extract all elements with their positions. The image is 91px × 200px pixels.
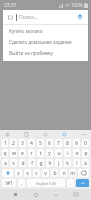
button[interactable]: Sticker bbox=[42, 131, 49, 138]
button[interactable]: 0 bbox=[82, 139, 89, 147]
button[interactable]: p bbox=[82, 149, 89, 157]
button[interactable]: Back bbox=[51, 190, 60, 199]
button[interactable]: 8 bbox=[64, 139, 71, 147]
staticText: x bbox=[26, 170, 29, 177]
button[interactable]: English (US) bbox=[27, 179, 65, 187]
button[interactable]: j bbox=[55, 159, 62, 167]
button[interactable]: Emoji bbox=[61, 131, 68, 138]
button[interactable]: l bbox=[73, 159, 80, 167]
staticText: 6 bbox=[48, 140, 51, 147]
staticText: t bbox=[40, 150, 42, 157]
button[interactable]: i bbox=[64, 149, 71, 157]
button[interactable]: b bbox=[51, 169, 58, 177]
staticText: v bbox=[44, 170, 47, 177]
staticText: Поиск… bbox=[19, 14, 38, 21]
staticText: s bbox=[12, 160, 15, 167]
button[interactable]: m bbox=[69, 169, 76, 177]
staticText: i bbox=[67, 150, 69, 157]
button[interactable]: Купить молоко bbox=[3, 25, 88, 36]
button[interactable]: . bbox=[67, 179, 74, 187]
button[interactable]: 1 bbox=[2, 139, 8, 147]
button[interactable]: y bbox=[46, 149, 53, 157]
button[interactable]: h bbox=[46, 159, 53, 167]
button[interactable]: Search engine bbox=[3, 10, 88, 24]
staticText: ä bbox=[84, 160, 87, 167]
button[interactable]: Clipboard bbox=[23, 131, 30, 138]
staticText: h bbox=[48, 160, 52, 167]
button[interactable]: Home bbox=[31, 190, 40, 199]
button[interactable]: Enter bbox=[76, 179, 89, 187]
button[interactable]: f bbox=[28, 159, 35, 167]
staticText: m bbox=[70, 170, 75, 177]
button[interactable]: 4 bbox=[28, 139, 35, 147]
staticText: y bbox=[48, 150, 51, 157]
button[interactable]: a bbox=[2, 159, 8, 167]
staticText: 8 bbox=[66, 140, 69, 147]
button[interactable]: s bbox=[10, 159, 17, 167]
staticText: 1 bbox=[4, 140, 7, 147]
staticText: 2 bbox=[12, 140, 15, 147]
staticText: 9 bbox=[75, 140, 78, 147]
button[interactable]: Shift bbox=[2, 169, 13, 177]
staticText: 23:31 bbox=[4, 2, 17, 9]
button[interactable]: More bbox=[80, 131, 87, 138]
staticText: !#1 bbox=[5, 180, 13, 187]
staticText: j bbox=[58, 160, 60, 167]
button[interactable]: t bbox=[37, 149, 44, 157]
button[interactable]: k bbox=[64, 159, 71, 167]
button[interactable]: 3 bbox=[19, 139, 26, 147]
staticText: 5 bbox=[39, 140, 42, 147]
button[interactable]: 6 bbox=[46, 139, 53, 147]
staticText: . bbox=[70, 180, 72, 187]
staticText: z bbox=[17, 170, 20, 177]
button[interactable]: n bbox=[60, 169, 67, 177]
button[interactable]: o bbox=[73, 149, 80, 157]
staticText: q bbox=[3, 150, 7, 157]
button[interactable]: w bbox=[10, 149, 17, 157]
button[interactable]: Keyboard toggle bbox=[71, 190, 80, 199]
staticText: a bbox=[4, 160, 7, 167]
staticText: b bbox=[53, 170, 57, 177]
button[interactable]: , bbox=[18, 179, 25, 187]
button[interactable]: x bbox=[24, 169, 31, 177]
button[interactable]: Сделать домашнее задание bbox=[3, 36, 88, 47]
staticText: Выйти на пробежку bbox=[9, 50, 53, 56]
staticText: 4 bbox=[30, 140, 33, 147]
button[interactable]: v bbox=[42, 169, 49, 177]
button[interactable]: 2 bbox=[10, 139, 17, 147]
button[interactable]: 7 bbox=[55, 139, 62, 147]
button[interactable]: ä bbox=[82, 159, 89, 167]
button[interactable]: Voice search bbox=[77, 14, 83, 20]
button[interactable]: 5 bbox=[37, 139, 44, 147]
button[interactable]: q bbox=[2, 149, 8, 157]
staticText: 7 bbox=[57, 140, 60, 147]
button[interactable]: z bbox=[15, 169, 22, 177]
button[interactable]: e bbox=[19, 149, 26, 157]
button[interactable]: c bbox=[33, 169, 40, 177]
button[interactable]: r bbox=[28, 149, 35, 157]
button[interactable]: Settings bbox=[4, 131, 11, 138]
staticText: p bbox=[84, 150, 88, 157]
staticText: u bbox=[57, 150, 61, 157]
staticText: r bbox=[30, 150, 33, 157]
staticText: e bbox=[21, 150, 24, 157]
button[interactable]: 9 bbox=[73, 139, 80, 147]
staticText: c bbox=[35, 170, 38, 177]
button[interactable]: u bbox=[55, 149, 62, 157]
button[interactable]: Recents bbox=[11, 190, 20, 199]
button[interactable]: g bbox=[37, 159, 44, 167]
staticText: g bbox=[39, 160, 43, 167]
button[interactable]: Выйти на пробежку bbox=[3, 47, 88, 58]
staticText: Сделать домашнее задание bbox=[9, 39, 72, 45]
staticText: k bbox=[66, 160, 69, 167]
button[interactable]: Backspace bbox=[78, 169, 89, 177]
other: Search engine bbox=[8, 15, 13, 20]
staticText: d bbox=[21, 160, 25, 167]
button[interactable]: !#1 bbox=[2, 179, 16, 187]
staticText: Купить молоко bbox=[9, 28, 43, 34]
staticText: l bbox=[76, 160, 78, 167]
button[interactable]: d bbox=[19, 159, 26, 167]
staticText: n bbox=[62, 170, 66, 177]
staticText: 0 bbox=[84, 140, 87, 147]
staticText: 100% bbox=[71, 2, 83, 8]
